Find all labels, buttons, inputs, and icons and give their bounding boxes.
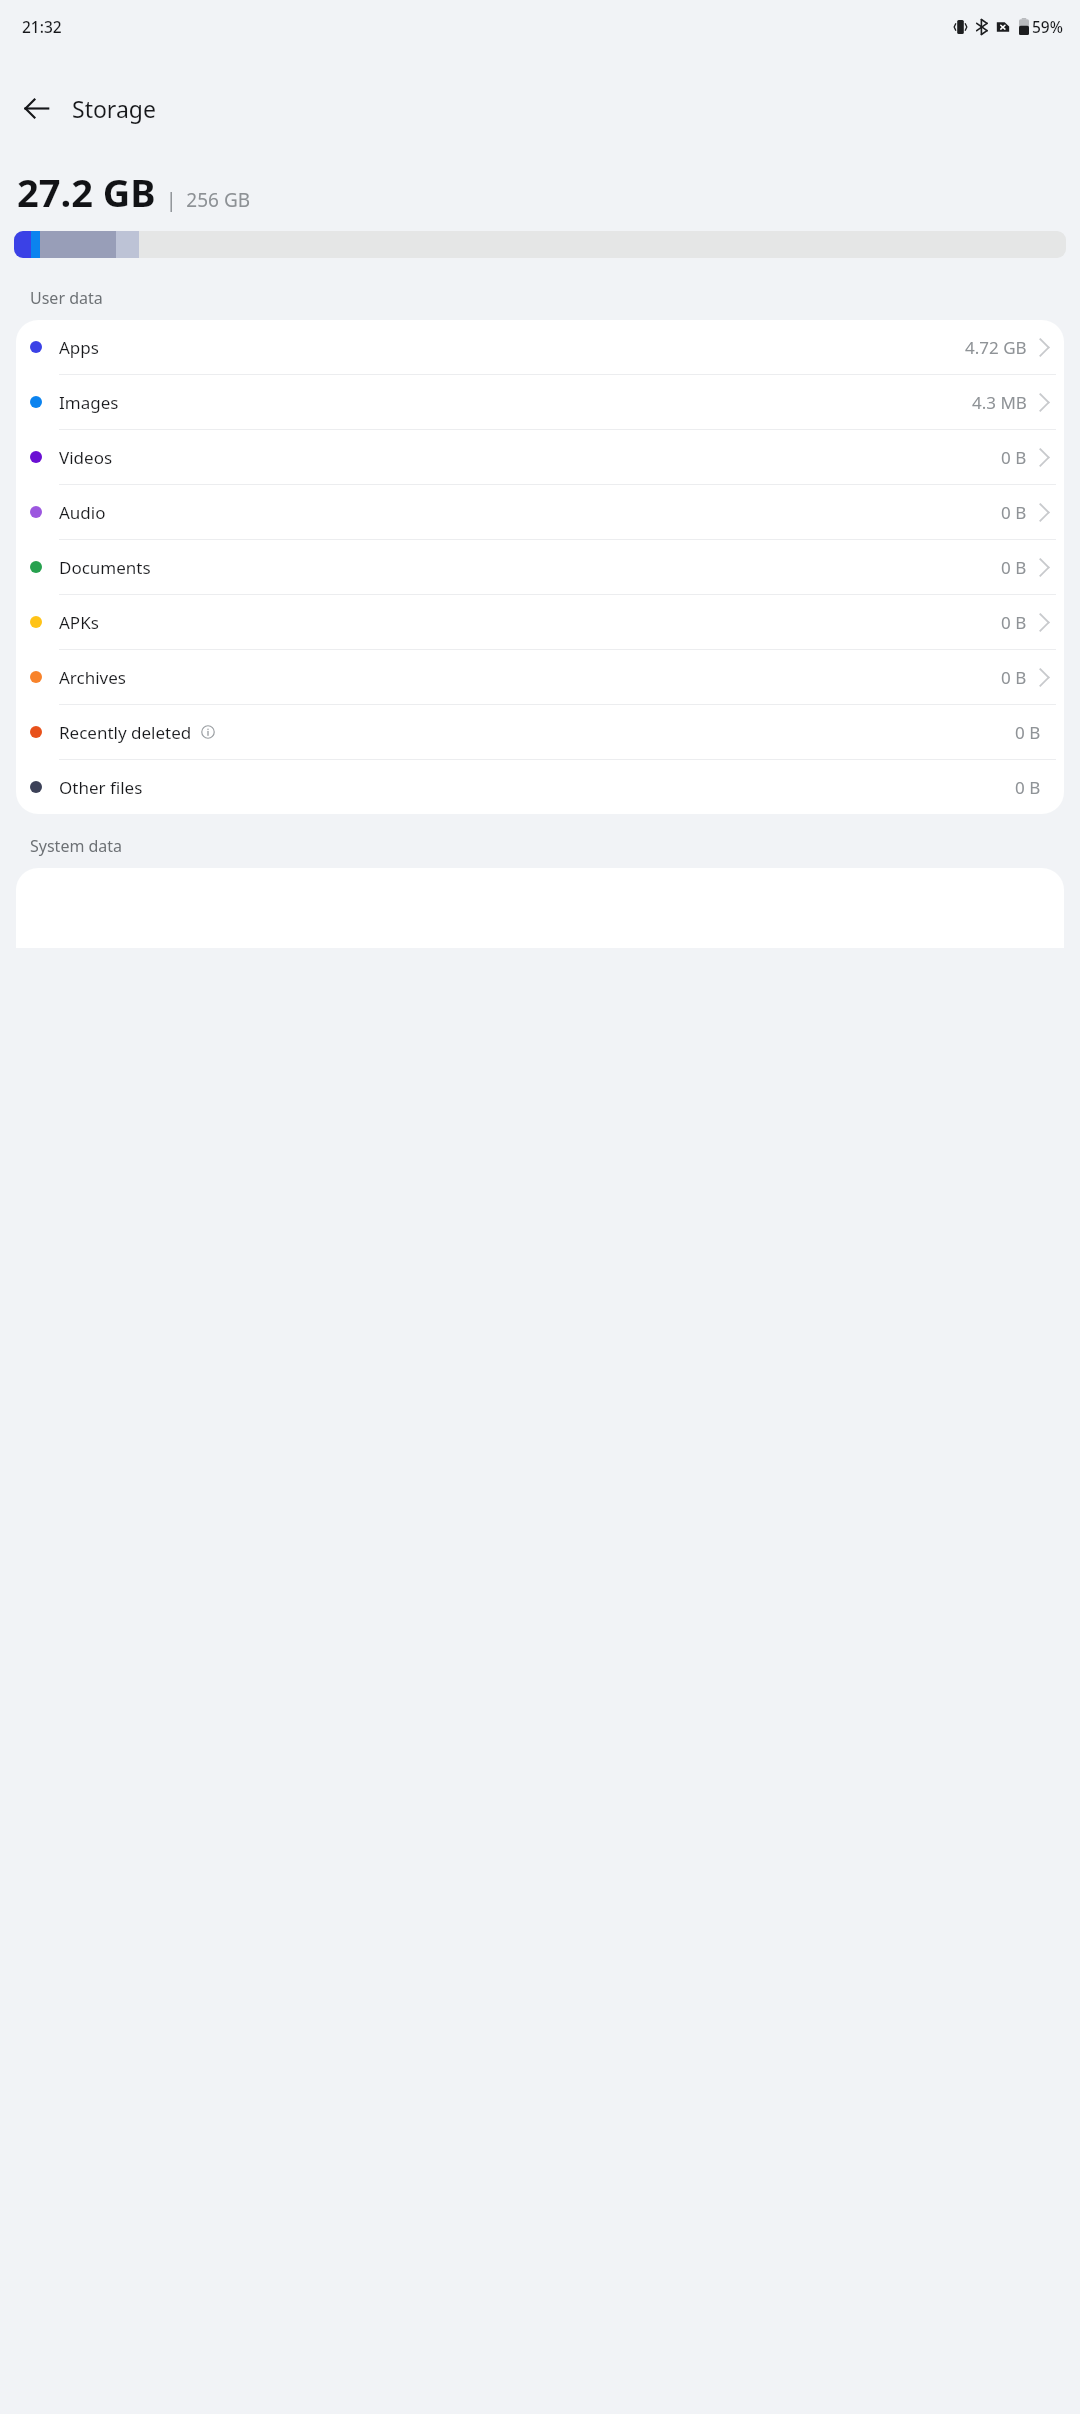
staticText: | 256 GB [166,187,251,213]
staticText: 0 B [1001,556,1027,579]
staticText: Apps [59,336,99,359]
button[interactable]: Recently deleted [16,705,1064,759]
staticText: 4.72 GB [965,336,1027,359]
button[interactable]: Videos [16,430,1064,484]
staticText: 27.2 GB [17,166,156,218]
button[interactable]: Documents [16,540,1064,594]
button[interactable]: Audio [16,485,1064,539]
staticText: Other files [59,776,143,799]
staticText: Videos [59,446,113,469]
staticText: Storage [72,93,156,124]
staticText: 0 B [1015,776,1041,799]
staticText: System data [30,835,123,857]
staticText: 0 B [1001,446,1027,469]
staticText: APKs [59,611,99,634]
staticText: Recently deleted [59,721,192,744]
staticText: User data [30,287,103,309]
button[interactable]: Archives [16,650,1064,704]
button[interactable]: Other files [16,760,1064,814]
staticText: 0 B [1001,611,1027,634]
button[interactable]: Apps [16,320,1064,374]
staticText: 0 B [1015,721,1041,744]
staticText: 0 B [1001,666,1027,689]
staticText: 59% [1032,16,1063,37]
staticText: Images [59,391,119,414]
staticText: Archives [59,666,126,689]
staticText: 21:32 [22,16,62,37]
staticText: Audio [59,501,106,524]
other: Info [201,725,215,739]
staticText: Documents [59,556,151,579]
staticText: 4.3 MB [972,391,1027,414]
staticText: 0 B [1001,501,1027,524]
button[interactable]: APKs [16,595,1064,649]
button[interactable]: Back [10,82,62,134]
button[interactable]: Images [16,375,1064,429]
